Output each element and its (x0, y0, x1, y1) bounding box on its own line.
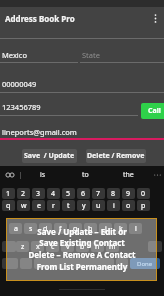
button[interactable]: m (106, 241, 119, 252)
staticText: 6 (81, 189, 86, 199)
button[interactable]: c (46, 241, 59, 252)
staticText: Mexico (2, 50, 27, 60)
button[interactable]: lineports@gmail.com (2, 127, 77, 137)
staticText: State (82, 50, 100, 60)
button[interactable]: 6 (77, 188, 90, 199)
button[interactable]: o (122, 200, 135, 211)
staticText: p (141, 201, 146, 211)
button[interactable]: 1 (2, 188, 15, 199)
button[interactable]: v (61, 241, 74, 252)
staticText: 123456789 (2, 102, 41, 112)
button[interactable]: Symbols (2, 258, 18, 269)
button[interactable]: t (62, 200, 75, 211)
button[interactable]: 5 (62, 188, 75, 199)
button[interactable]: g (69, 223, 82, 234)
staticText: 8 (111, 189, 116, 199)
staticText: lineports@gmail.com (2, 127, 77, 137)
button[interactable]: a (9, 223, 22, 234)
button[interactable]: r (47, 200, 60, 211)
staticText: y (82, 201, 86, 211)
staticText: v (66, 242, 70, 252)
staticText: is (40, 170, 46, 180)
staticText: to (82, 170, 89, 180)
staticText: 00000049 (2, 79, 37, 89)
button[interactable]: 8 (107, 188, 120, 199)
button[interactable]: x (31, 241, 44, 252)
staticText: Done (137, 260, 153, 268)
button[interactable]: Space (34, 258, 114, 269)
staticText: g (73, 224, 78, 234)
staticText: d (43, 224, 48, 234)
staticText: b (80, 242, 85, 252)
button[interactable]: w (17, 200, 30, 211)
staticText: h (88, 224, 93, 234)
button[interactable]: is (21, 166, 64, 184)
staticText: f (59, 224, 62, 234)
staticText: the (123, 170, 134, 180)
button[interactable]: Delete / Remove (86, 149, 146, 163)
button[interactable]: s (24, 223, 37, 234)
button[interactable]: p (137, 200, 150, 211)
button[interactable]: i (107, 200, 120, 211)
staticText: q (6, 201, 11, 211)
button[interactable]: 7 (92, 188, 105, 199)
staticText: t (67, 201, 70, 211)
button[interactable]: Backspace (148, 241, 162, 252)
button[interactable]: Mexico (2, 50, 27, 60)
button[interactable]: d (39, 223, 52, 234)
staticText: w (21, 201, 27, 211)
staticText: j (105, 224, 107, 234)
button[interactable]: Done (130, 258, 160, 269)
button[interactable]: 00000049 (2, 79, 37, 89)
button[interactable]: More options (146, 7, 164, 29)
staticText: s (29, 224, 33, 234)
staticText: m (109, 242, 116, 252)
staticText: x (36, 242, 40, 252)
staticText: u (96, 201, 101, 211)
staticText: e (37, 201, 41, 211)
button[interactable]: f (54, 223, 67, 234)
staticText: c (51, 242, 55, 252)
staticText: r (52, 201, 55, 211)
staticText: Delete / Remove (87, 151, 145, 161)
staticText: z (21, 242, 25, 252)
button[interactable]: the (107, 166, 150, 184)
button[interactable]: k (114, 223, 127, 234)
button[interactable]: Call (141, 103, 164, 119)
button[interactable]: 123456789 (2, 102, 41, 112)
staticText: 7 (96, 189, 101, 199)
button[interactable]: 4 (47, 188, 60, 199)
button[interactable]: to (64, 166, 107, 184)
staticText: 0 (141, 189, 146, 199)
button[interactable]: 9 (122, 188, 135, 199)
button[interactable]: Period (116, 258, 128, 269)
button[interactable]: 3 (32, 188, 45, 199)
button[interactable]: 2 (17, 188, 30, 199)
button[interactable]: e (32, 200, 45, 211)
button[interactable]: Save / Update (22, 149, 77, 163)
button[interactable]: h (84, 223, 97, 234)
button[interactable]: q (2, 200, 15, 211)
staticText: Call (148, 106, 161, 116)
button[interactable]: z (16, 241, 29, 252)
staticText: k (119, 224, 123, 234)
button[interactable]: y (77, 200, 90, 211)
button[interactable]: 0 (137, 188, 150, 199)
staticText: o (126, 201, 131, 211)
button[interactable]: Shift (2, 241, 16, 252)
button[interactable]: Keyboard settings (0, 166, 20, 184)
staticText: Address Book Pro (5, 13, 146, 24)
button[interactable]: More suggestions (150, 166, 164, 184)
staticText: 5 (66, 189, 71, 199)
staticText: a (14, 224, 18, 234)
button[interactable]: b (76, 241, 89, 252)
button[interactable]: n (91, 241, 104, 252)
staticText: 1 (6, 189, 11, 199)
button[interactable]: u (92, 200, 105, 211)
button[interactable]: l (129, 223, 142, 234)
button[interactable]: j (99, 223, 112, 234)
staticText: 9 (126, 189, 131, 199)
button[interactable]: State (82, 50, 100, 60)
staticText: 2 (21, 189, 26, 199)
